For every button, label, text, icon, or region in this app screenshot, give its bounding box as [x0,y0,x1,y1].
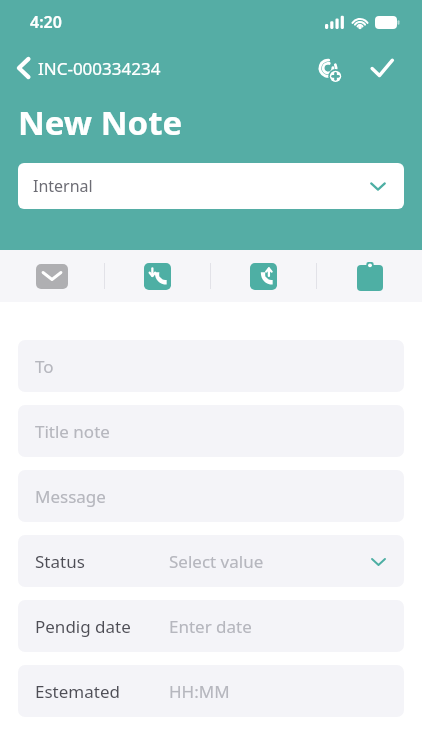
staticText: Estemated [35,680,120,703]
staticText: HH:MM [169,680,230,703]
staticText: Title note [35,420,110,443]
staticText: Message [35,485,106,508]
staticText: INC-000334234 [38,57,161,80]
button[interactable]: Add attachment [308,48,348,88]
button[interactable]: Incoming call [105,250,210,302]
button[interactable]: Pendig date [18,600,404,652]
staticText: Internal [33,175,93,197]
button[interactable]: Status [18,535,404,587]
button[interactable]: Title note [18,405,404,457]
staticText: Select value [169,550,264,573]
button[interactable]: Outgoing call [211,250,316,302]
button[interactable]: Save [362,48,402,88]
button[interactable]: Message [18,470,404,522]
staticText: Status [35,550,85,573]
staticText: New Note [18,100,183,145]
button[interactable]: Note [317,250,422,302]
staticText: Enter date [169,615,252,638]
button[interactable]: Internal [18,163,404,209]
staticText: Pendig date [35,615,131,638]
staticText: To [35,355,54,378]
button[interactable]: Email [0,250,104,302]
button[interactable]: INC-000334234 [14,52,163,84]
button[interactable]: Estemated [18,665,404,717]
button[interactable]: To [18,340,404,392]
staticText: 4:20 [30,11,62,33]
